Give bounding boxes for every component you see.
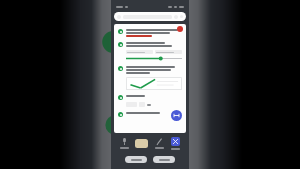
other: More options — [180, 15, 183, 18]
button[interactable]: Draw — [154, 137, 165, 150]
other: Reload — [174, 15, 178, 19]
button[interactable]: Save — [153, 156, 175, 163]
button[interactable]: Submit — [171, 110, 182, 121]
button[interactable]: Preview — [135, 139, 148, 148]
button[interactable]: Site info — [114, 12, 186, 21]
button[interactable] — [126, 77, 182, 90]
button[interactable] — [126, 50, 153, 54]
button[interactable]: Slider — [126, 56, 182, 61]
other: Site info — [117, 15, 121, 19]
button[interactable]: Tools — [170, 136, 181, 151]
button[interactable]: Alert — [177, 26, 183, 32]
button[interactable] — [155, 50, 182, 54]
button[interactable]: Record — [119, 137, 130, 150]
button[interactable]: Cancel — [125, 156, 147, 163]
